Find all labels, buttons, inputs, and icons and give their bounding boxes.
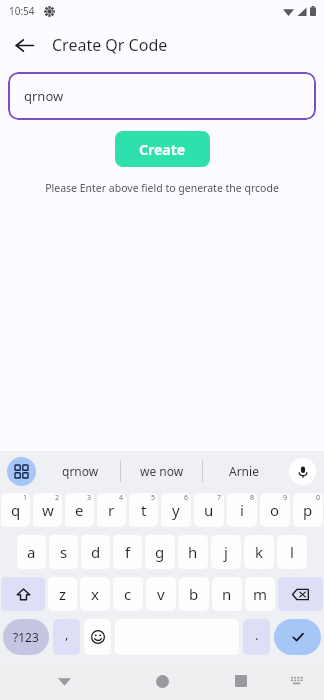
button[interactable]: Shift bbox=[1, 577, 45, 611]
staticText: 5 bbox=[151, 493, 156, 503]
button[interactable]: g bbox=[145, 535, 175, 569]
staticText: i bbox=[240, 500, 244, 520]
button[interactable]: . bbox=[243, 619, 270, 655]
button[interactable]: b bbox=[179, 577, 209, 611]
staticText: qrnow bbox=[62, 463, 99, 479]
button[interactable]: , bbox=[53, 619, 80, 655]
staticText: l bbox=[290, 542, 294, 562]
staticText: z bbox=[59, 584, 67, 604]
staticText: y bbox=[172, 500, 180, 520]
staticText: 4 bbox=[119, 493, 124, 503]
button[interactable]: Voice input bbox=[289, 458, 316, 485]
button[interactable]: Keyboard options bbox=[7, 457, 36, 486]
staticText: t bbox=[141, 500, 147, 520]
staticText: f bbox=[125, 542, 131, 562]
staticText: r bbox=[108, 500, 115, 520]
button[interactable]: j bbox=[211, 535, 241, 569]
staticText: b bbox=[189, 584, 199, 604]
button[interactable]: o bbox=[260, 493, 290, 527]
staticText: 8 bbox=[250, 493, 255, 503]
button[interactable]: x bbox=[80, 577, 110, 611]
button[interactable]: s bbox=[49, 535, 78, 569]
staticText: d bbox=[91, 542, 101, 562]
staticText: 2 bbox=[55, 493, 60, 503]
staticText: , bbox=[65, 625, 69, 643]
staticText: Please Enter above field to generate the… bbox=[0, 181, 324, 195]
button[interactable]: v bbox=[146, 577, 176, 611]
staticText: o bbox=[270, 500, 280, 520]
staticText: p bbox=[303, 500, 313, 520]
staticText: e bbox=[75, 500, 84, 520]
button[interactable]: d bbox=[81, 535, 110, 569]
button[interactable]: y bbox=[161, 493, 191, 527]
button[interactable]: r bbox=[97, 493, 126, 527]
button[interactable]: k bbox=[244, 535, 274, 569]
button[interactable]: Delete bbox=[278, 577, 323, 611]
staticText: 7 bbox=[217, 493, 222, 503]
button[interactable]: p bbox=[293, 493, 323, 527]
button[interactable]: Back bbox=[6, 27, 42, 63]
button[interactable]: n bbox=[212, 577, 242, 611]
staticText: q bbox=[11, 500, 21, 520]
button[interactable]: z bbox=[48, 577, 77, 611]
button[interactable]: u bbox=[194, 493, 224, 527]
button[interactable]: qrnow bbox=[40, 460, 120, 482]
button[interactable]: c bbox=[113, 577, 143, 611]
staticText: 10:54 bbox=[9, 4, 35, 18]
staticText: a bbox=[27, 542, 36, 562]
staticText: . bbox=[255, 626, 259, 644]
button[interactable]: a bbox=[17, 535, 46, 569]
button[interactable]: h bbox=[178, 535, 208, 569]
button[interactable]: t bbox=[129, 493, 158, 527]
staticText: Create Qr Code bbox=[52, 34, 168, 56]
staticText: w bbox=[42, 500, 54, 520]
button[interactable]: l bbox=[277, 535, 307, 569]
staticText: k bbox=[255, 542, 264, 562]
staticText: v bbox=[157, 584, 165, 604]
staticText: s bbox=[60, 542, 68, 562]
button[interactable]: we now bbox=[121, 460, 202, 482]
staticText: j bbox=[224, 542, 228, 562]
button[interactable]: q bbox=[1, 493, 30, 527]
staticText: 0 bbox=[316, 493, 321, 503]
staticText: 3 bbox=[87, 493, 92, 503]
button[interactable]: i bbox=[227, 493, 257, 527]
staticText: Arnie bbox=[229, 463, 259, 479]
staticText: u bbox=[204, 500, 214, 520]
staticText: n bbox=[222, 584, 232, 604]
staticText: 9 bbox=[283, 493, 288, 503]
staticText: qrnow bbox=[24, 87, 64, 105]
button[interactable]: e bbox=[65, 493, 94, 527]
staticText: g bbox=[155, 542, 165, 562]
button[interactable]: m bbox=[245, 577, 275, 611]
staticText: m bbox=[253, 584, 268, 604]
staticText: ?123 bbox=[13, 629, 39, 645]
button[interactable]: w bbox=[33, 493, 62, 527]
button[interactable]: Switch keyboard bbox=[286, 671, 306, 691]
staticText: h bbox=[188, 542, 198, 562]
button[interactable]: ?123 bbox=[3, 619, 49, 655]
button[interactable]: Arnie bbox=[203, 460, 284, 482]
button[interactable]: f bbox=[113, 535, 142, 569]
staticText: c bbox=[124, 584, 132, 604]
staticText: x bbox=[91, 584, 99, 604]
staticText: 6 bbox=[184, 493, 189, 503]
button[interactable]: Recents bbox=[230, 670, 252, 692]
button[interactable]: Hide keyboard bbox=[58, 675, 71, 688]
staticText: we now bbox=[140, 463, 184, 479]
button[interactable]: Emoji bbox=[84, 619, 111, 655]
button[interactable]: Enter bbox=[274, 619, 321, 655]
button[interactable]: Create bbox=[115, 131, 210, 167]
staticText: Create bbox=[139, 140, 186, 159]
button[interactable]: Home bbox=[150, 669, 174, 693]
staticText: 1 bbox=[23, 493, 28, 503]
button[interactable]: qrnow bbox=[8, 72, 316, 120]
